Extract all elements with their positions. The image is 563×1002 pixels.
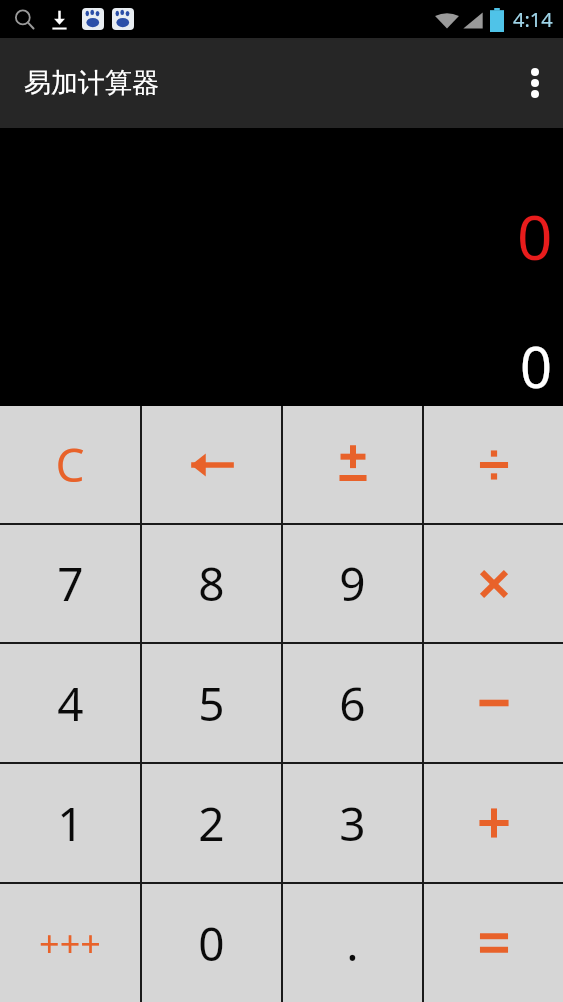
button[interactable]: More options	[507, 55, 563, 111]
button[interactable]: 5	[142, 644, 281, 762]
button[interactable]: Divide	[424, 406, 563, 523]
staticText: 0	[517, 194, 553, 278]
button[interactable]: 6	[283, 644, 422, 762]
button[interactable]: 2	[142, 764, 281, 882]
staticText: 9	[339, 552, 366, 615]
staticText: 0	[198, 912, 225, 975]
button[interactable]: 8	[142, 525, 281, 642]
staticText: 易加计算器	[24, 66, 159, 100]
button[interactable]: 1	[0, 764, 140, 882]
button[interactable]: C	[0, 406, 140, 523]
staticText: 0	[520, 328, 553, 404]
staticText: 4:14	[513, 6, 553, 33]
button[interactable]: Multiply	[424, 525, 563, 642]
staticText: +++	[39, 919, 101, 968]
staticText: 8	[198, 552, 225, 615]
staticText: 5	[198, 672, 225, 735]
button[interactable]: 3	[283, 764, 422, 882]
staticText: 2	[198, 792, 225, 855]
button[interactable]: .	[283, 884, 422, 1002]
button[interactable]: Backspace	[142, 406, 281, 523]
button[interactable]: 0	[142, 884, 281, 1002]
button[interactable]: Plus minus	[283, 406, 422, 523]
button[interactable]: 9	[283, 525, 422, 642]
staticText: 4	[57, 672, 84, 735]
button[interactable]: Add	[424, 764, 563, 882]
staticText: 3	[339, 792, 366, 855]
staticText: C	[55, 433, 85, 496]
staticText: 6	[339, 672, 366, 735]
staticText: 7	[57, 552, 84, 615]
button[interactable]: Equals	[424, 884, 563, 1002]
button[interactable]: +++	[0, 884, 140, 1002]
button[interactable]: 7	[0, 525, 140, 642]
staticText: .	[346, 912, 359, 975]
button[interactable]: 4	[0, 644, 140, 762]
button[interactable]: Subtract	[424, 644, 563, 762]
staticText: 1	[57, 792, 84, 855]
